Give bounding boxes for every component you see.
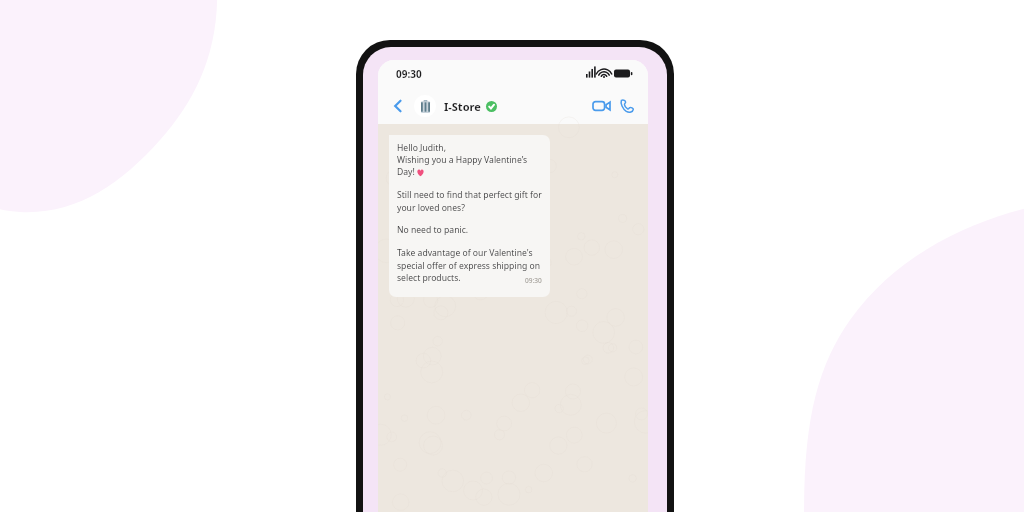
button[interactable]: Hello Judith, xyxy=(389,135,550,297)
staticText: I-Store xyxy=(444,99,481,114)
staticText: 09:30 xyxy=(525,276,542,285)
staticText: No need to panic. xyxy=(397,224,469,236)
staticText: Hello Judith, xyxy=(397,142,446,154)
button[interactable]: Voice call xyxy=(614,93,640,119)
staticText: Wishing you a Happy Valentine’s xyxy=(397,154,528,166)
button[interactable]: Back xyxy=(386,94,410,118)
staticText: Take advantage of our Valentine's specia… xyxy=(397,247,540,283)
button[interactable]: Video call xyxy=(588,93,614,119)
button[interactable]: Contact avatar xyxy=(414,95,436,117)
staticText: Day! xyxy=(397,166,415,178)
staticText: 09:30 xyxy=(396,67,422,81)
button[interactable]: I-Store xyxy=(444,99,588,114)
staticText: Still need to find that perfect gift for… xyxy=(397,189,542,213)
